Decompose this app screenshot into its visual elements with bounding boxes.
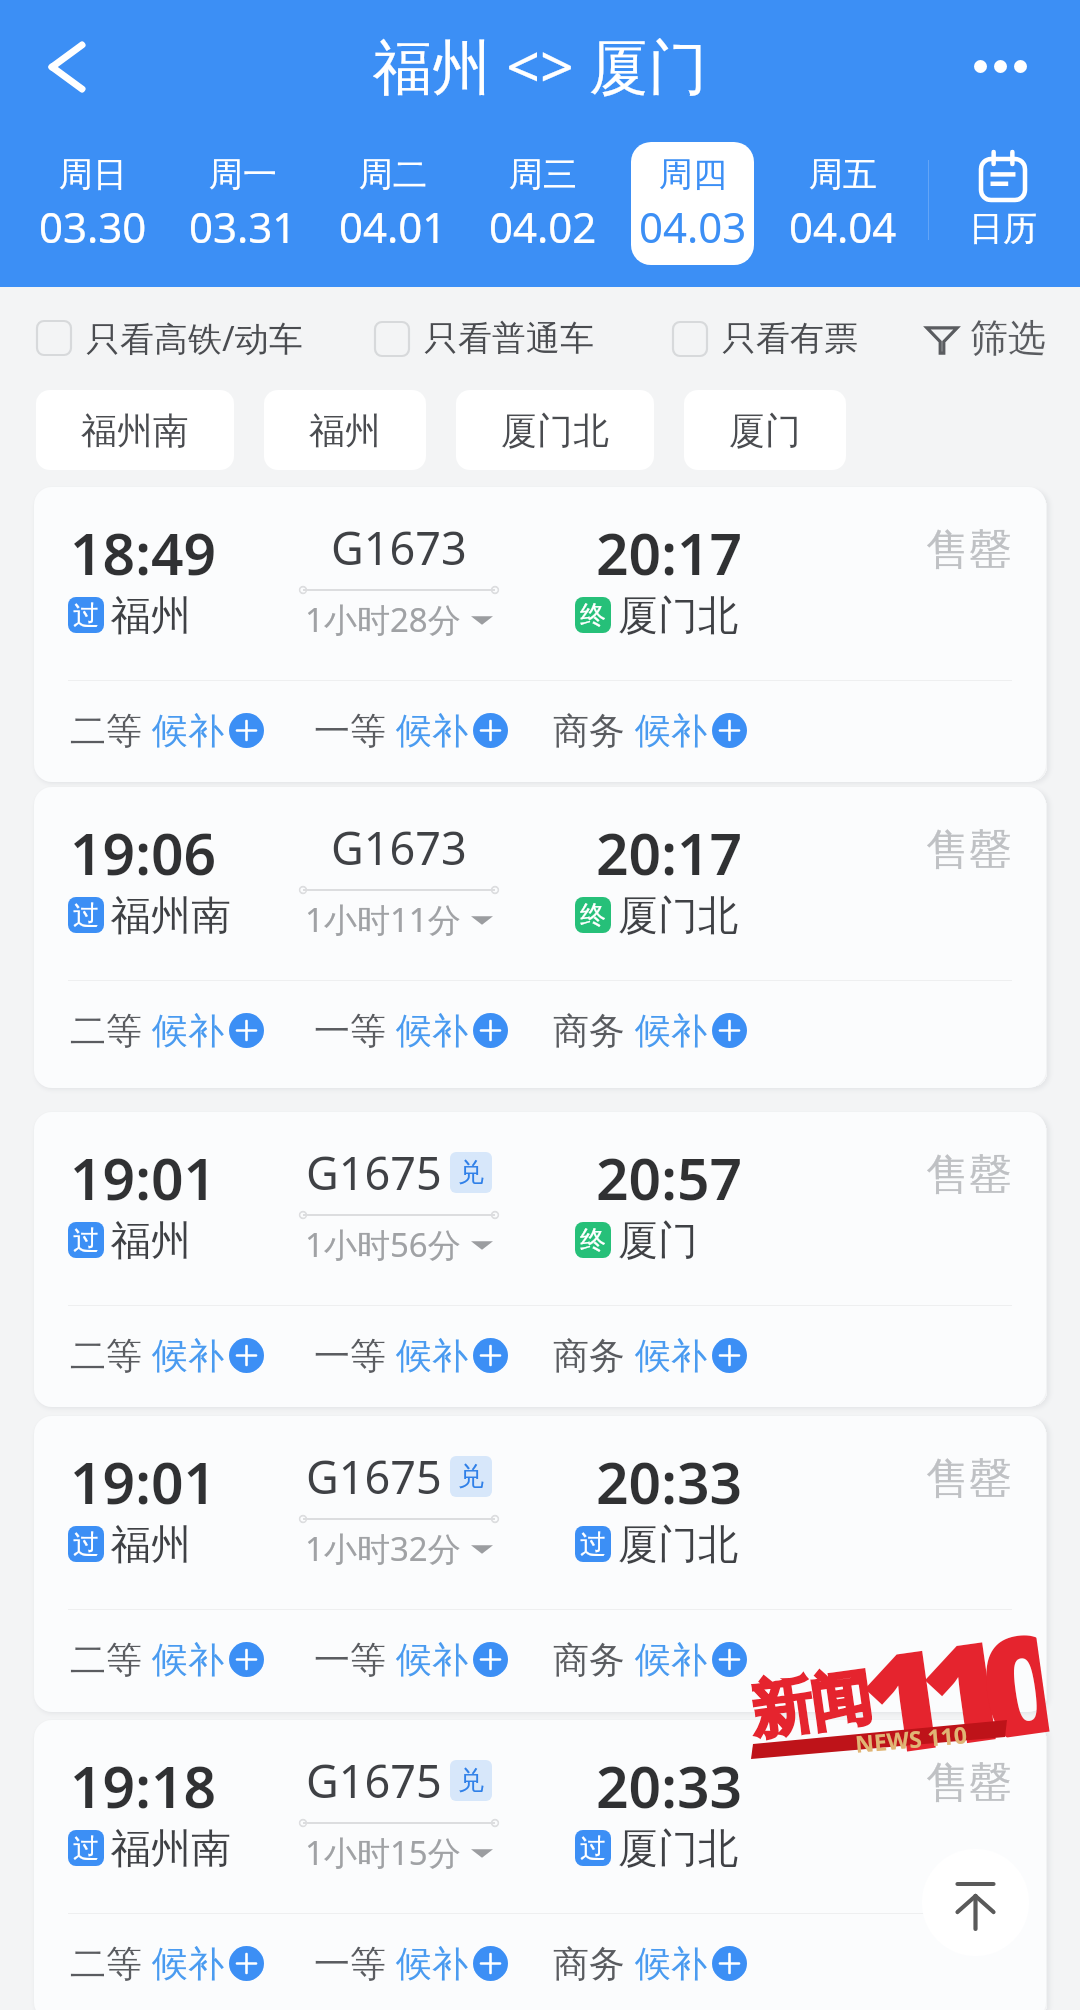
staticText: 周二	[359, 153, 427, 196]
staticText: 20:33	[596, 1747, 743, 1825]
staticText: 04.04	[789, 198, 897, 255]
button[interactable]: 周三	[481, 142, 604, 265]
staticText: 售罄	[926, 1756, 1012, 1810]
button[interactable]: 筛选	[924, 314, 1080, 362]
button[interactable]: 厦门北	[456, 390, 654, 470]
staticText: 过	[580, 1528, 606, 1561]
button[interactable]: 商务	[553, 1637, 747, 1682]
staticText: 04.01	[339, 198, 447, 255]
staticText: 终	[580, 899, 606, 932]
button[interactable]: 18:49	[34, 487, 1046, 782]
staticText: G1673	[331, 517, 467, 578]
staticText: 19:06	[70, 814, 217, 892]
button[interactable]: 商务	[553, 708, 747, 753]
staticText: 厦门北	[618, 1519, 738, 1569]
button[interactable]: 二等	[70, 1008, 264, 1053]
button[interactable]: 19:01	[34, 1416, 1046, 1712]
staticText: 兑	[458, 1764, 484, 1797]
staticText: 19:18	[70, 1747, 217, 1825]
staticText: 候补	[396, 1941, 468, 1986]
button[interactable]: 福州	[264, 390, 426, 470]
staticText: 03.30	[39, 198, 147, 255]
staticText: 候补	[396, 1008, 468, 1053]
button[interactable]: 19:18	[34, 1720, 1046, 2010]
staticText: 福州南	[111, 1823, 231, 1873]
staticText: 110	[847, 1583, 1050, 1757]
button[interactable]: 一等	[314, 1941, 508, 1986]
staticText: 只看普通车	[424, 317, 594, 360]
staticText: 兑	[458, 1156, 484, 1189]
staticText: 只看有票	[722, 317, 858, 360]
staticText: 日历	[969, 207, 1037, 250]
staticText: 候补	[635, 1333, 707, 1378]
staticText: 售罄	[926, 1452, 1012, 1506]
staticText: 候补	[152, 1941, 224, 1986]
staticText: 20:33	[596, 1443, 743, 1521]
button[interactable]: 只看有票	[672, 317, 858, 360]
button[interactable]: More options	[952, 18, 1048, 114]
button[interactable]: 二等	[70, 1941, 264, 1986]
button[interactable]: 厦门	[684, 390, 846, 470]
staticText: 商务	[553, 708, 625, 753]
staticText: 厦门北	[618, 1823, 738, 1873]
button[interactable]: 周五	[781, 142, 904, 265]
staticText: 厦门北	[618, 890, 738, 940]
staticText: 1小时11分	[305, 897, 461, 942]
staticText: 兑	[458, 1460, 484, 1493]
staticText: 终	[580, 599, 606, 632]
staticText: 一等	[314, 708, 386, 753]
staticText: 二等	[70, 1008, 142, 1053]
staticText: 售罄	[926, 823, 1012, 877]
button[interactable]: 一等	[314, 1637, 508, 1682]
staticText: 候补	[152, 1637, 224, 1682]
staticText: 04.02	[489, 198, 597, 255]
staticText: 周日	[59, 153, 127, 196]
button[interactable]: 19:06	[34, 787, 1046, 1088]
button[interactable]: 商务	[553, 1333, 747, 1378]
staticText: NEWS 110	[854, 1718, 968, 1759]
staticText: 候补	[152, 1008, 224, 1053]
button[interactable]: 一等	[314, 1333, 508, 1378]
staticText: 商务	[553, 1941, 625, 1986]
button[interactable]: 只看高铁/动车	[36, 315, 303, 361]
button[interactable]: 二等	[70, 1333, 264, 1378]
button[interactable]: 一等	[314, 708, 508, 753]
staticText: 19:01	[70, 1443, 217, 1521]
staticText: 福州南	[111, 890, 231, 940]
staticText: 厦门	[729, 408, 801, 453]
button[interactable]: 只看普通车	[374, 317, 594, 360]
staticText: 1小时32分	[305, 1526, 461, 1571]
button[interactable]: Back	[22, 18, 118, 114]
button[interactable]: 一等	[314, 1008, 508, 1053]
staticText: 终	[580, 1224, 606, 1257]
button[interactable]: 周日	[31, 142, 154, 265]
button[interactable]: Back to top	[922, 1849, 1029, 1956]
staticText: 二等	[70, 1333, 142, 1378]
staticText: 厦门北	[618, 590, 738, 640]
staticText: 19:01	[70, 1139, 217, 1217]
staticText: 周一	[209, 153, 277, 196]
staticText: 一等	[314, 1637, 386, 1682]
staticText: 商务	[553, 1637, 625, 1682]
staticText: 厦门北	[501, 408, 609, 453]
button[interactable]: 福州南	[36, 390, 234, 470]
button[interactable]: 周一	[181, 142, 304, 265]
button[interactable]: 日历	[938, 141, 1068, 259]
button[interactable]: 商务	[553, 1941, 747, 1986]
staticText: 候补	[635, 1637, 707, 1682]
staticText: 周三	[509, 153, 577, 196]
staticText: 候补	[635, 1941, 707, 1986]
button[interactable]: 周二	[331, 142, 454, 265]
staticText: 候补	[396, 1333, 468, 1378]
button[interactable]: 二等	[70, 1637, 264, 1682]
button[interactable]: 19:01	[34, 1112, 1046, 1407]
button[interactable]: 二等	[70, 708, 264, 753]
staticText: 过	[73, 1832, 99, 1865]
staticText: G1675	[306, 1142, 442, 1203]
staticText: 周五	[809, 153, 877, 196]
staticText: 售罄	[926, 1148, 1012, 1202]
staticText: G1675	[306, 1750, 442, 1811]
button[interactable]: 商务	[553, 1008, 747, 1053]
staticText: 20:17	[596, 814, 743, 892]
button[interactable]: 周四	[631, 142, 754, 265]
